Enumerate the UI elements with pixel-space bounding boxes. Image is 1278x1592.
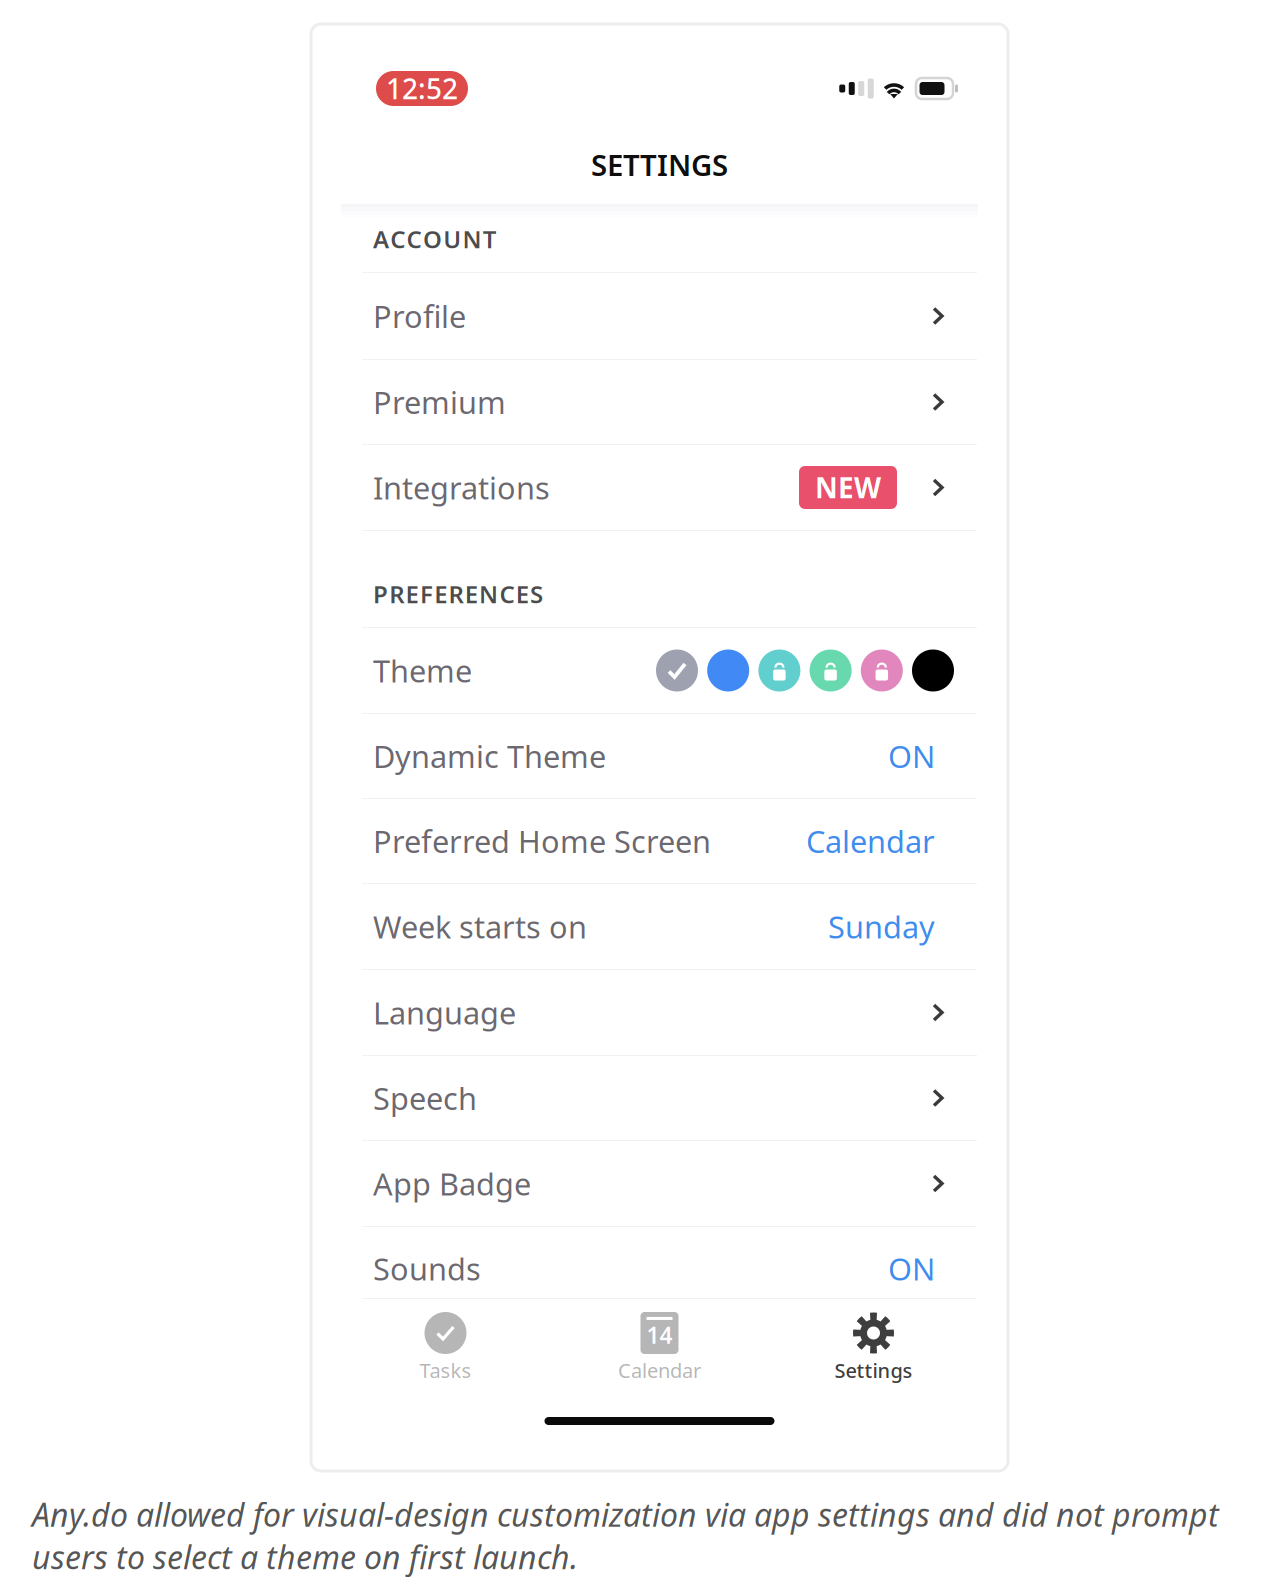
staticText: ON (888, 736, 935, 776)
staticText: Any.do allowed for visual-design customi… (32, 1493, 1219, 1578)
button[interactable]: Dynamic Theme (311, 714, 1008, 799)
staticText: Profile (373, 296, 466, 336)
staticText: PREFERENCES (373, 578, 543, 610)
staticText: 14 (646, 1320, 672, 1350)
button[interactable]: Integrations (311, 445, 1008, 531)
staticText: Speech (373, 1078, 477, 1118)
staticText: ON (888, 1248, 935, 1289)
button[interactable]: 14 (552, 1299, 766, 1401)
button[interactable]: Settings (766, 1299, 980, 1401)
button[interactable]: Speech (311, 1056, 1008, 1141)
staticText: SETTINGS (591, 145, 728, 184)
staticText: Dynamic Theme (373, 736, 606, 776)
button[interactable]: Week starts on (311, 884, 1008, 970)
button[interactable]: Profile (311, 273, 1008, 360)
button[interactable]: Theme (311, 628, 1008, 714)
staticText: Week starts on (373, 906, 587, 947)
staticText: Premium (373, 382, 506, 422)
button[interactable]: Pink theme, locked (861, 649, 903, 691)
staticText: Sunday (828, 906, 935, 947)
staticText: Theme (373, 650, 472, 691)
button[interactable]: Teal theme, locked (758, 649, 800, 691)
button[interactable]: Sounds (311, 1227, 1008, 1299)
staticText: Sounds (373, 1248, 481, 1289)
button[interactable]: Green theme, locked (810, 649, 852, 691)
staticText: Calendar (618, 1357, 701, 1384)
staticText: NEW (815, 469, 881, 506)
staticText: Integrations (373, 467, 550, 508)
button[interactable]: Premium (311, 360, 1008, 445)
button[interactable]: Preferred Home Screen (311, 799, 1008, 884)
staticText: Settings (834, 1357, 912, 1384)
button[interactable]: Language (311, 970, 1008, 1056)
button[interactable]: Tasks (338, 1299, 552, 1401)
staticText: Preferred Home Screen (373, 821, 711, 861)
staticText: 12:52 (386, 70, 458, 107)
staticText: Language (373, 992, 516, 1033)
button[interactable]: Blue theme (707, 649, 749, 691)
staticText: App Badge (373, 1163, 531, 1204)
staticText: Calendar (806, 821, 935, 861)
button[interactable]: Black theme (912, 649, 954, 691)
button[interactable]: App Badge (311, 1141, 1008, 1227)
staticText: ACCOUNT (373, 223, 497, 255)
button[interactable]: Default theme, selected (656, 649, 698, 691)
staticText: Tasks (419, 1357, 471, 1384)
